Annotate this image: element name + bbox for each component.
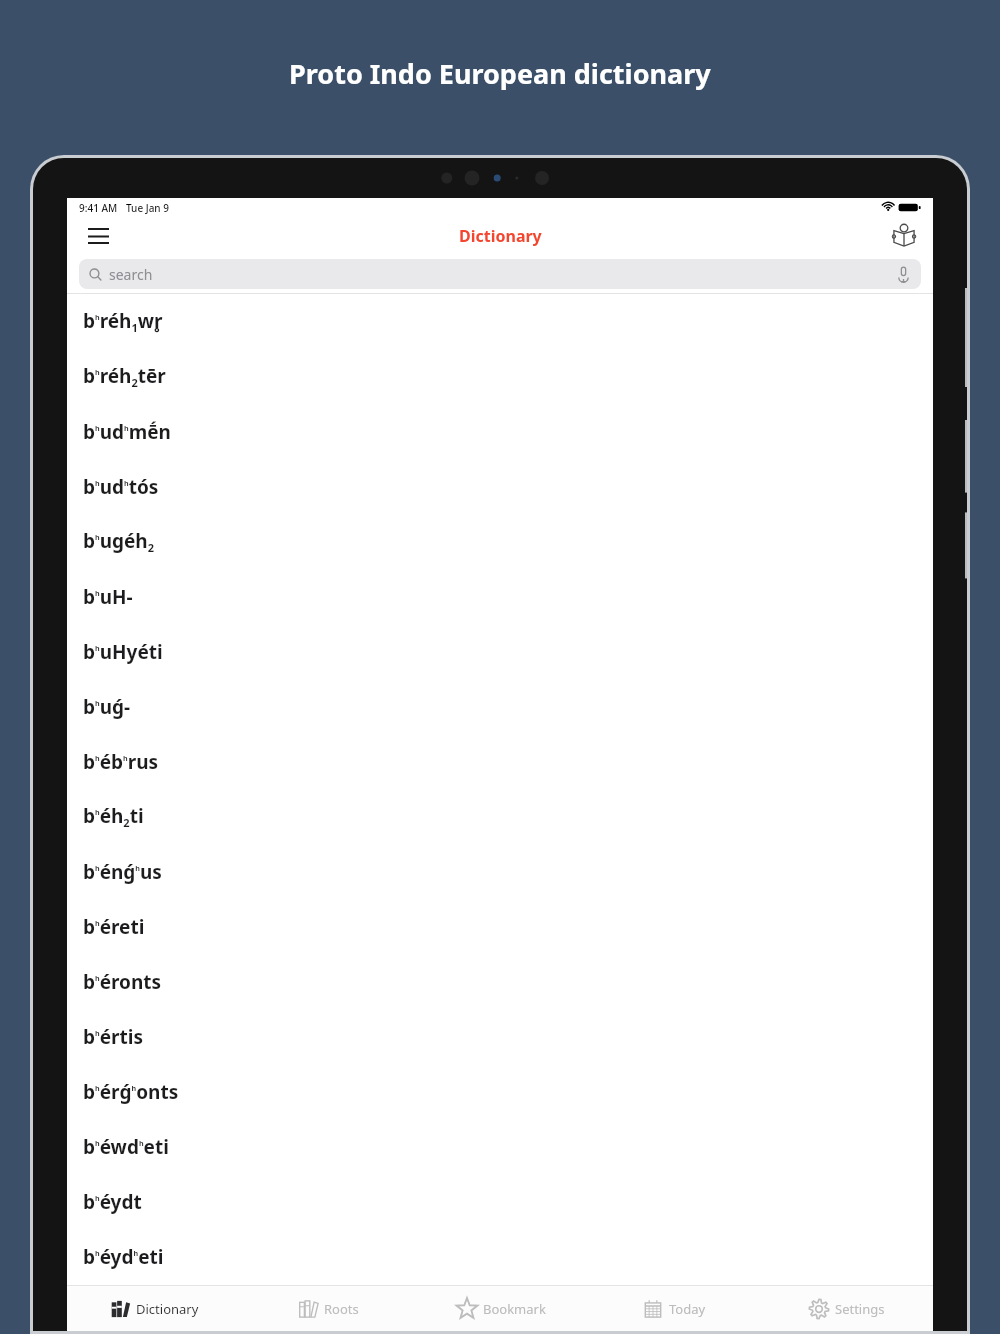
staticText: bʰugéh2 bbox=[83, 528, 155, 555]
staticText: bʰéh2ti bbox=[83, 803, 144, 830]
button[interactable]: bʰéydʰeti bbox=[67, 1229, 933, 1284]
button[interactable]: bʰuHyéti bbox=[67, 624, 933, 679]
button[interactable]: bʰuH- bbox=[67, 569, 933, 624]
staticText: bʰéwdʰeti bbox=[83, 1134, 169, 1160]
button[interactable]: Bookmark bbox=[414, 1286, 587, 1331]
staticText: bʰuǵ- bbox=[83, 694, 131, 720]
button[interactable]: bʰénǵʰus bbox=[67, 844, 933, 899]
staticText: bʰréh2tēr bbox=[83, 363, 166, 390]
staticText: 9:41 AM bbox=[79, 201, 118, 215]
button[interactable]: bʰréh1wr̥ bbox=[67, 294, 933, 349]
button[interactable]: bʰéydt bbox=[67, 1174, 933, 1229]
staticText: search bbox=[109, 265, 153, 284]
staticText: bʰértis bbox=[83, 1024, 143, 1050]
staticText: bʰréh1wr̥ bbox=[83, 308, 163, 335]
staticText: Bookmark bbox=[483, 1300, 546, 1318]
staticText: bʰuHyéti bbox=[83, 639, 163, 665]
staticText: bʰérǵʰonts bbox=[83, 1079, 179, 1105]
button[interactable]: search bbox=[79, 259, 921, 289]
staticText: Proto Indo European dictionary bbox=[289, 55, 711, 92]
staticText: bʰéydʰeti bbox=[83, 1244, 164, 1270]
staticText: Settings bbox=[835, 1300, 885, 1318]
staticText: Roots bbox=[324, 1300, 359, 1318]
staticText: Dictionary bbox=[136, 1300, 199, 1318]
button[interactable]: bʰéwdʰeti bbox=[67, 1119, 933, 1174]
button[interactable]: Reader bbox=[887, 219, 921, 253]
staticText: bʰudʰtós bbox=[83, 474, 159, 500]
staticText: bʰuH- bbox=[83, 584, 133, 610]
button[interactable]: bʰéronts bbox=[67, 954, 933, 1009]
button[interactable]: bʰuǵ- bbox=[67, 679, 933, 734]
staticText: Tue Jan 9 bbox=[126, 201, 169, 215]
staticText: Dictionary bbox=[459, 225, 542, 247]
button[interactable]: Menu bbox=[81, 219, 115, 253]
button[interactable]: Roots bbox=[241, 1286, 414, 1331]
staticText: bʰudʰmḗn bbox=[83, 419, 171, 445]
staticText: bʰéronts bbox=[83, 969, 162, 995]
button[interactable]: bʰugéh2 bbox=[67, 514, 933, 569]
button[interactable]: Today bbox=[587, 1286, 760, 1331]
staticText: bʰébʰrus bbox=[83, 749, 159, 775]
staticText: bʰéreti bbox=[83, 914, 145, 940]
button[interactable]: bʰérǵʰonts bbox=[67, 1064, 933, 1119]
staticText: bʰéydt bbox=[83, 1189, 142, 1215]
button[interactable]: bʰréh2tēr bbox=[67, 349, 933, 404]
staticText: bʰénǵʰus bbox=[83, 859, 162, 885]
button[interactable]: bʰéreti bbox=[67, 899, 933, 954]
button[interactable]: bʰértis bbox=[67, 1009, 933, 1064]
button[interactable]: Dictionary bbox=[67, 1286, 241, 1331]
button[interactable]: Settings bbox=[760, 1286, 933, 1331]
button[interactable]: bʰudʰmḗn bbox=[67, 404, 933, 459]
button[interactable]: bʰudʰtós bbox=[67, 459, 933, 514]
staticText: Today bbox=[669, 1300, 706, 1318]
button[interactable]: bʰéh2ti bbox=[67, 789, 933, 844]
button[interactable]: bʰébʰrus bbox=[67, 734, 933, 789]
